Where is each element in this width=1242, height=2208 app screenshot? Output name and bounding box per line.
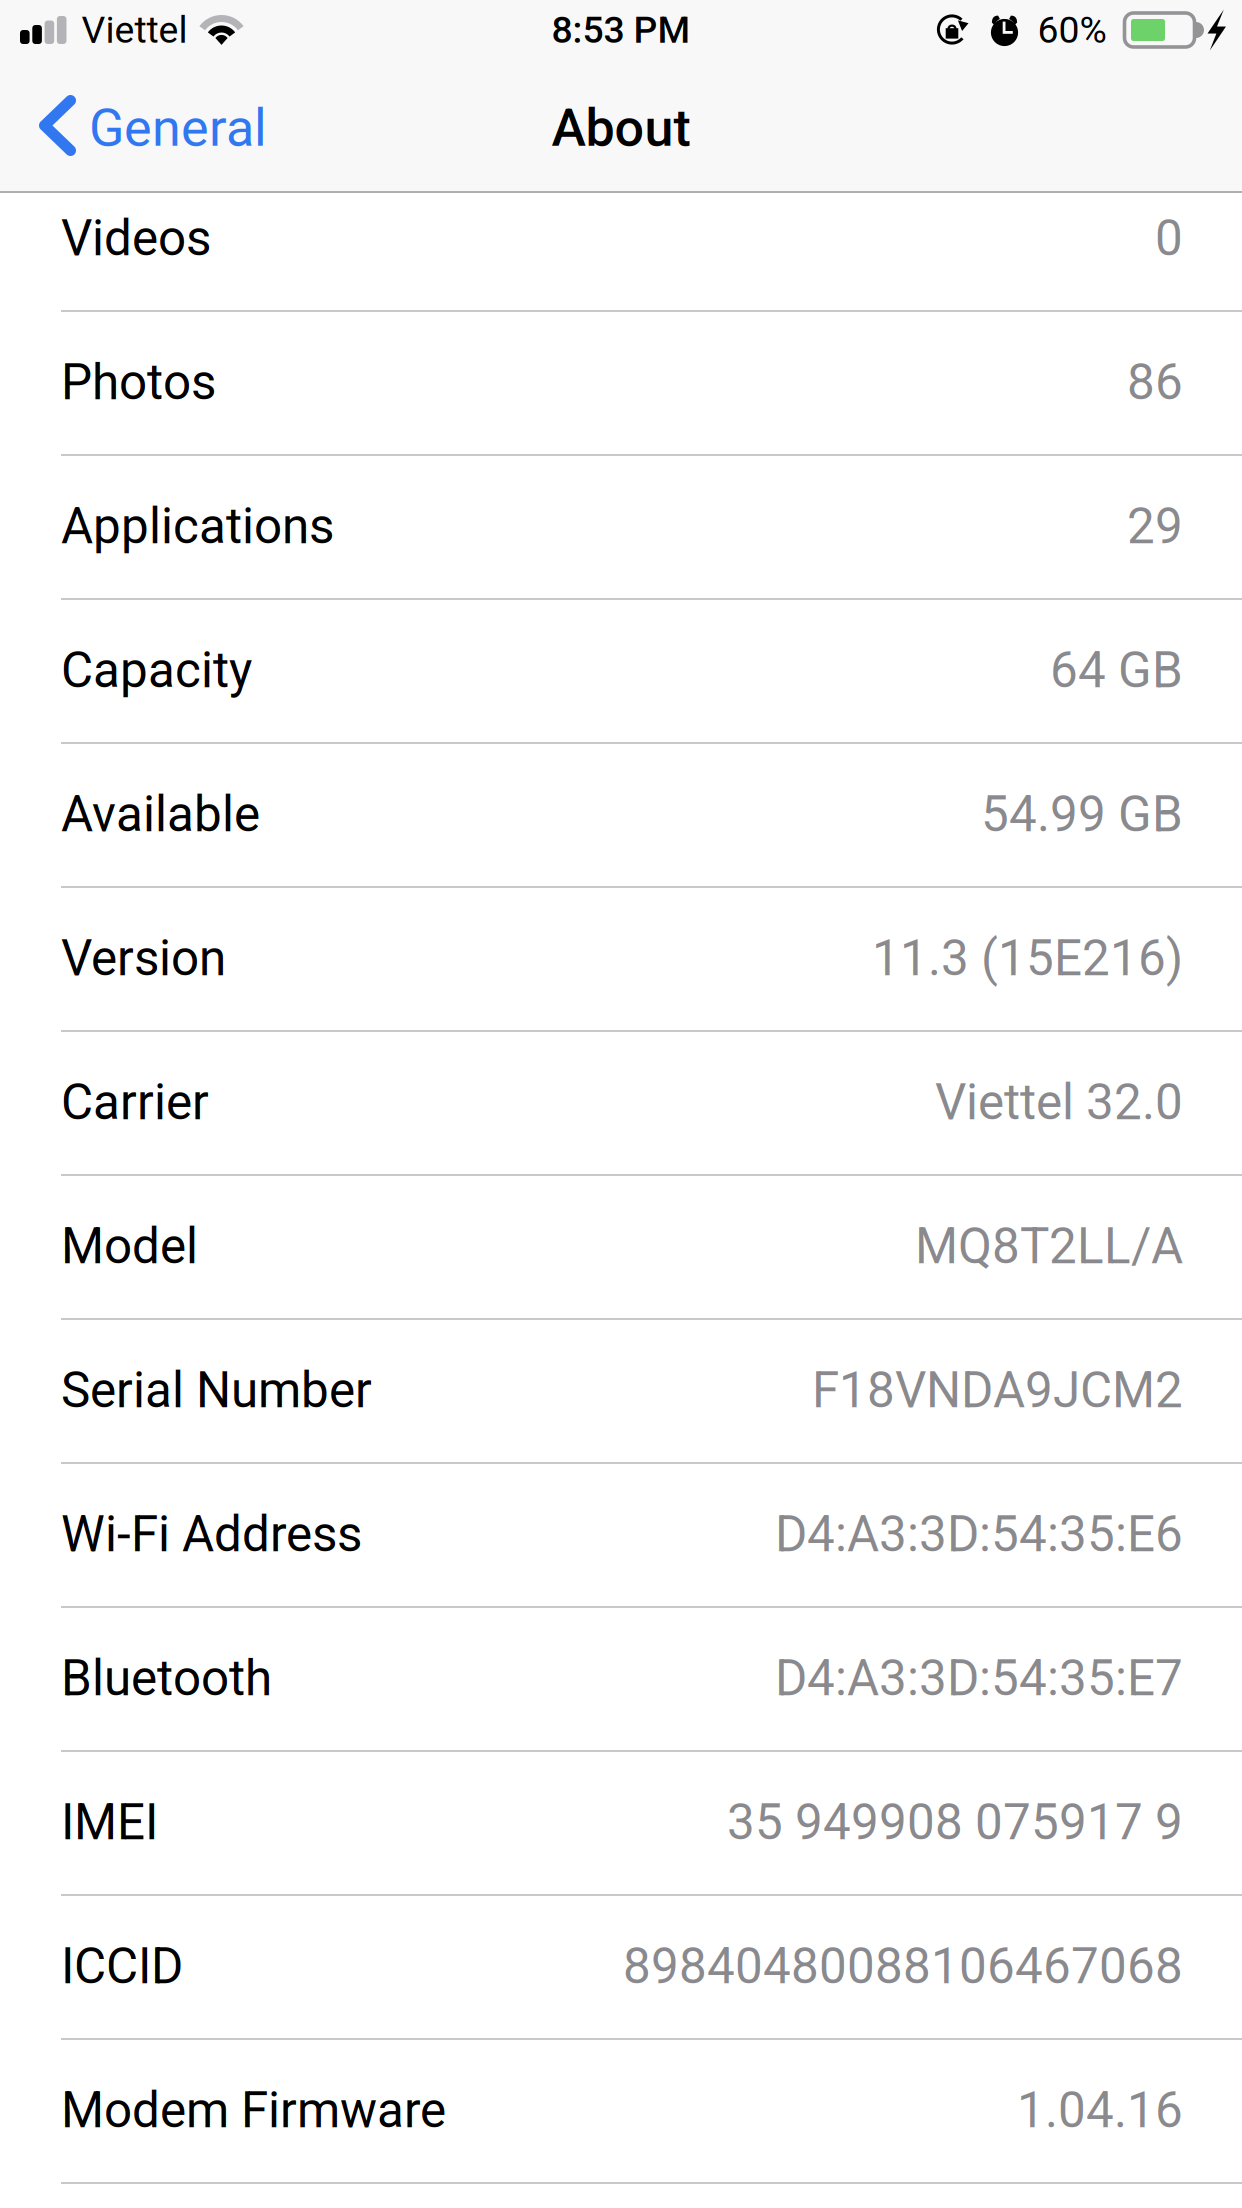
button[interactable]: Model (0, 1176, 1242, 1320)
button[interactable]: IMEI (0, 1752, 1242, 1896)
button[interactable]: Capacity (0, 600, 1242, 744)
staticText: Available (61, 786, 260, 843)
staticText: 60% (1037, 8, 1106, 52)
staticText: F18VNDA9JCM2 (812, 1362, 1183, 1419)
staticText: 0 (1155, 210, 1183, 267)
staticText: IMEI (61, 1794, 158, 1851)
staticText: 8:53 PM (551, 8, 690, 52)
staticText: Capacity (61, 642, 252, 699)
staticText: Model (61, 1218, 198, 1275)
button[interactable]: Applications (0, 456, 1242, 600)
staticText: MQ8T2LL/A (915, 1218, 1183, 1275)
staticText: 35 949908 075917 9 (727, 1794, 1183, 1851)
staticText: 29 (1127, 498, 1183, 555)
staticText: General (89, 97, 267, 158)
staticText: Carrier (61, 1074, 209, 1131)
staticText: Serial Number (61, 1362, 372, 1419)
button[interactable]: General (0, 60, 289, 191)
button[interactable]: Bluetooth (0, 1608, 1242, 1752)
staticText: D4:A3:3D:54:35:E7 (775, 1650, 1183, 1707)
button[interactable]: Version (0, 888, 1242, 1032)
button[interactable]: ICCID (0, 1896, 1242, 2040)
staticText: Photos (61, 354, 216, 411)
staticText: Videos (61, 210, 211, 267)
staticText: Bluetooth (61, 1650, 272, 1707)
staticText: Modem Firmware (61, 2082, 446, 2139)
button[interactable]: Wi-Fi Address (0, 1464, 1242, 1608)
staticText: Version (61, 930, 226, 987)
button[interactable]: Carrier (0, 1032, 1242, 1176)
staticText: 89840480088106467068 (623, 1938, 1183, 1995)
staticText: 11.3 (15E216) (872, 930, 1183, 987)
staticText: Wi-Fi Address (61, 1506, 362, 1563)
staticText: 54.99 GB (981, 786, 1183, 843)
staticText: Viettel 32.0 (935, 1074, 1183, 1131)
staticText: 1.04.16 (1017, 2082, 1183, 2139)
staticText: About (551, 97, 690, 158)
staticText: Viettel (81, 8, 187, 52)
staticText: Applications (61, 498, 334, 555)
button[interactable]: Photos (0, 312, 1242, 456)
button[interactable]: Modem Firmware (0, 2040, 1242, 2184)
staticText: 64 GB (1050, 642, 1183, 699)
button[interactable]: Videos (0, 168, 1242, 312)
button[interactable]: Available (0, 744, 1242, 888)
staticText: D4:A3:3D:54:35:E6 (775, 1506, 1183, 1563)
staticText: 86 (1127, 354, 1183, 411)
button[interactable]: Serial Number (0, 1320, 1242, 1464)
staticText: ICCID (61, 1938, 183, 1995)
